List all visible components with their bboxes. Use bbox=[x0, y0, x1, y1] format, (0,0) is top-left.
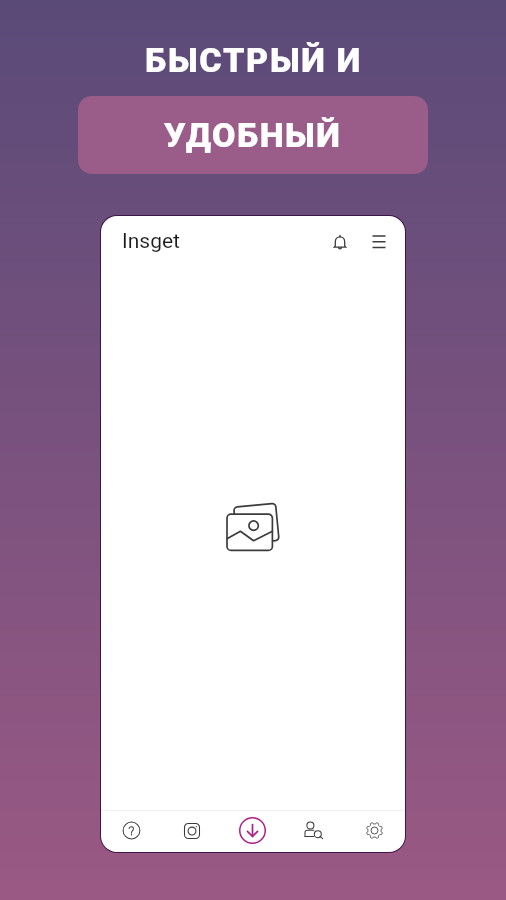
button[interactable]: Menu bbox=[364, 227, 394, 257]
button[interactable]: Settings bbox=[344, 811, 405, 852]
button[interactable]: Instagram bbox=[161, 811, 222, 852]
button[interactable]: Notifications bbox=[325, 227, 355, 257]
staticText: БЫСТРЫЙ И bbox=[145, 40, 362, 80]
button[interactable]: Help bbox=[101, 811, 161, 852]
button[interactable]: Download bbox=[222, 811, 283, 852]
button[interactable]: Search users bbox=[283, 811, 344, 852]
staticText: УДОБНЫЙ bbox=[164, 115, 342, 155]
staticText: Insget bbox=[122, 229, 180, 254]
